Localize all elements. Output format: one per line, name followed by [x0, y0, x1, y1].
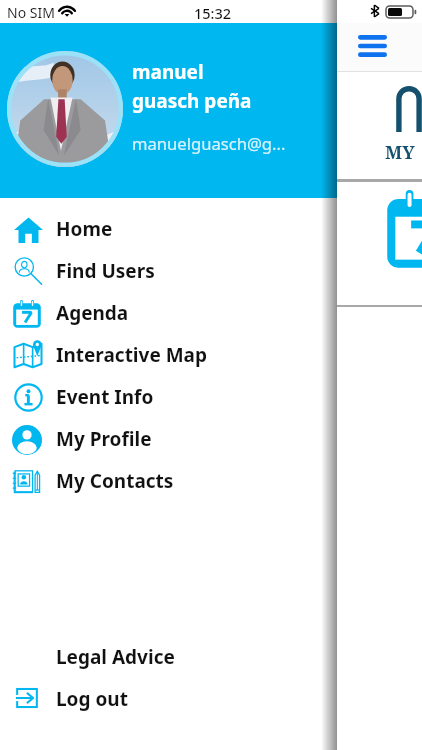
button[interactable]: Event Info: [0, 376, 337, 418]
staticText: Find Users: [56, 258, 155, 284]
staticText: Interactive Map: [56, 342, 207, 368]
button[interactable]: My Profile: [0, 418, 337, 460]
button[interactable]: Open navigation menu: [358, 35, 387, 57]
staticText: Event Info: [56, 384, 154, 410]
staticText: Agenda: [56, 300, 129, 326]
staticText: manuelguasch@g...: [132, 132, 286, 155]
staticText: Log out: [56, 686, 128, 712]
button[interactable]: Interactive Map: [0, 334, 337, 376]
staticText: Home: [56, 216, 113, 242]
staticText: 15:32: [194, 3, 232, 23]
staticText: No SIM: [7, 3, 55, 22]
button[interactable]: Home: [0, 208, 337, 250]
staticText: My Contacts: [56, 468, 174, 494]
button[interactable]: Agenda: [0, 292, 337, 334]
staticText: manuel: [132, 59, 204, 85]
button[interactable]: Log out: [0, 678, 337, 720]
button[interactable]: My Contacts: [0, 460, 337, 502]
staticText: guasch peña: [132, 88, 252, 114]
staticText: Legal Advice: [56, 644, 175, 670]
button[interactable]: Legal Advice: [0, 636, 337, 678]
button[interactable]: Find Users: [0, 250, 337, 292]
staticText: My Profile: [56, 426, 152, 452]
staticText: MY: [385, 140, 415, 165]
